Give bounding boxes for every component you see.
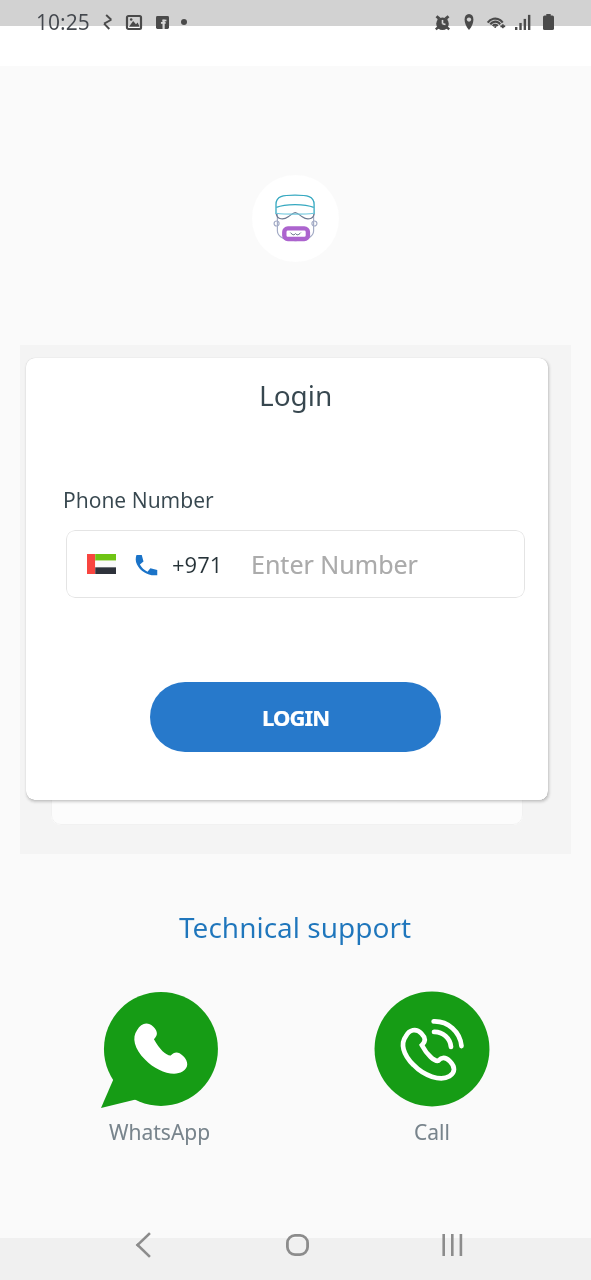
button[interactable]: Home	[269, 1224, 325, 1266]
button[interactable]: LOGIN	[150, 682, 441, 752]
other: WhatsApp	[101, 991, 219, 1111]
button[interactable]: Recents	[423, 1224, 479, 1266]
staticText: +971	[172, 549, 223, 579]
staticText: Call	[414, 1118, 450, 1147]
staticText: WhatsApp	[109, 1118, 211, 1147]
other: Call	[373, 991, 491, 1111]
staticText: Technical support	[179, 908, 412, 946]
button[interactable]: Call	[352, 991, 512, 1147]
staticText: 10:25	[36, 8, 90, 36]
button[interactable]: Back	[115, 1224, 171, 1266]
button[interactable]: WhatsApp	[80, 991, 240, 1147]
staticText: LOGIN	[262, 702, 330, 732]
button[interactable]: +971	[66, 530, 525, 598]
staticText: Phone Number	[63, 486, 214, 515]
staticText: Enter Number	[251, 547, 418, 581]
staticText: Login	[259, 376, 333, 414]
